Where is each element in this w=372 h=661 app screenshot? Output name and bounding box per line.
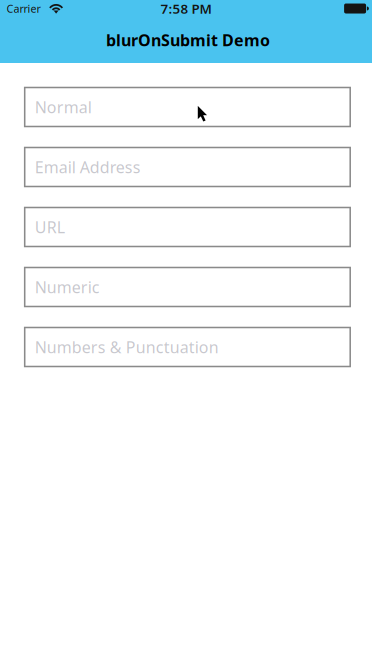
staticText: blurOnSubmit Demo bbox=[106, 29, 270, 51]
button[interactable]: Numeric bbox=[25, 267, 350, 306]
staticText: URL bbox=[35, 216, 65, 238]
staticText: Carrier bbox=[6, 1, 40, 16]
staticText: Numeric bbox=[35, 276, 100, 298]
staticText: 7:58 PM bbox=[160, 0, 211, 17]
staticText: Normal bbox=[35, 96, 92, 118]
button[interactable]: Numbers & Punctuation bbox=[25, 327, 350, 366]
button[interactable]: Email Address bbox=[25, 147, 350, 186]
button[interactable]: URL bbox=[25, 207, 350, 246]
staticText: Numbers & Punctuation bbox=[35, 336, 219, 358]
staticText: Email Address bbox=[35, 156, 141, 178]
button[interactable]: Normal bbox=[25, 87, 350, 126]
